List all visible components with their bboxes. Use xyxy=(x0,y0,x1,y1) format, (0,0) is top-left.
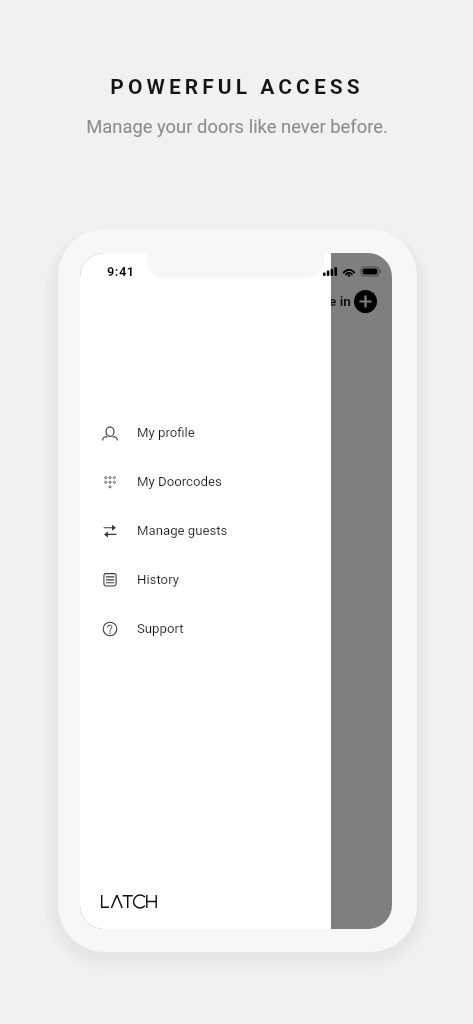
button[interactable]: History xyxy=(80,555,331,604)
staticText: 9:41 xyxy=(107,264,135,279)
staticText: Support xyxy=(137,621,184,636)
staticText: POWERFUL ACCESS xyxy=(110,75,364,100)
staticText: Manage guests xyxy=(137,523,228,538)
staticText: Manage your doors like never before. xyxy=(86,116,388,138)
button[interactable]: Support xyxy=(80,604,331,653)
staticText: History xyxy=(137,572,179,587)
button[interactable]: My profile xyxy=(80,408,331,457)
staticText: Someone in xyxy=(279,293,351,309)
button[interactable]: My Doorcodes xyxy=(80,457,331,506)
staticText: My Doorcodes xyxy=(137,474,222,489)
staticText: My profile xyxy=(137,425,195,440)
button[interactable]: Manage guests xyxy=(80,506,331,555)
button[interactable]: Add xyxy=(354,290,377,313)
